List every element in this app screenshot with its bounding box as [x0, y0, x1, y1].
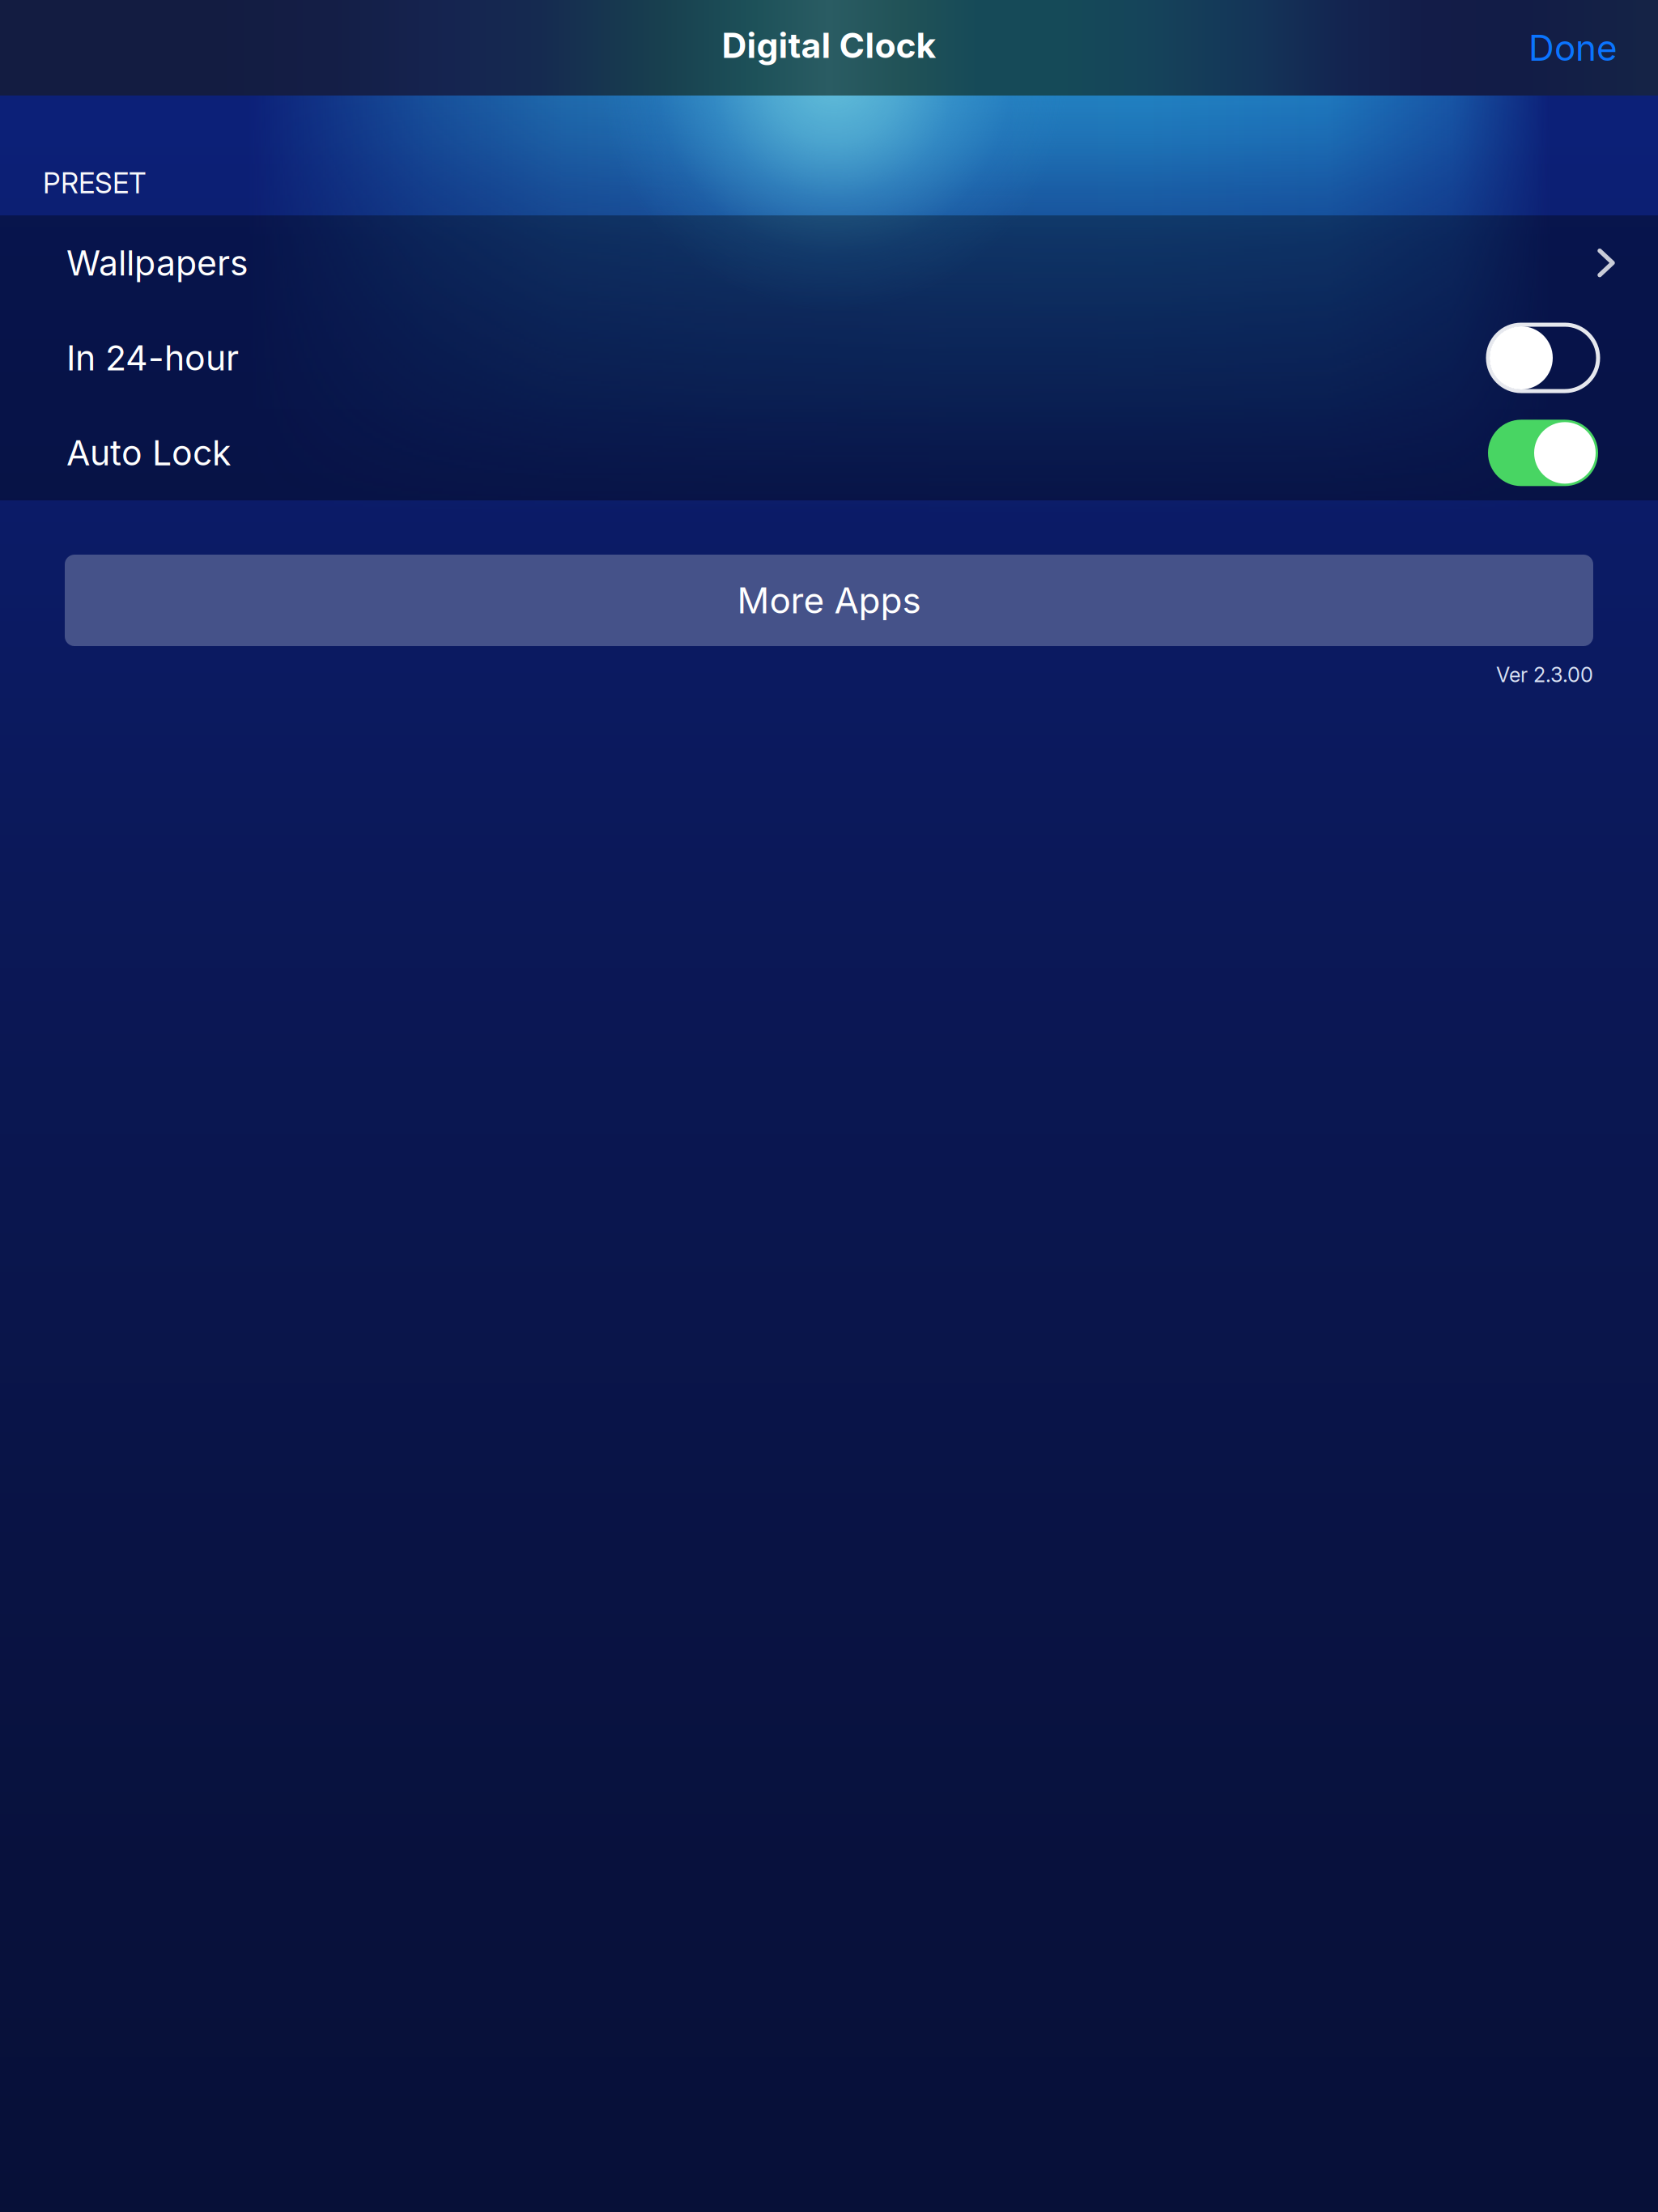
button[interactable]: Done [1507, 8, 1639, 87]
staticText: Digital Clock [722, 24, 936, 66]
staticText: In 24-hour [66, 337, 239, 379]
button[interactable]: In 24-hour [0, 310, 1658, 405]
staticText: Ver 2.3.00 [1496, 662, 1593, 687]
staticText: Auto Lock [66, 432, 231, 474]
button[interactable]: Wallpapers [0, 215, 1658, 310]
button[interactable]: Auto Lock [0, 405, 1658, 500]
button[interactable]: More Apps [65, 555, 1593, 646]
staticText: Wallpapers [66, 242, 249, 284]
staticText: Done [1528, 26, 1618, 69]
staticText: More Apps [737, 579, 921, 622]
staticText: PRESET [43, 166, 147, 200]
